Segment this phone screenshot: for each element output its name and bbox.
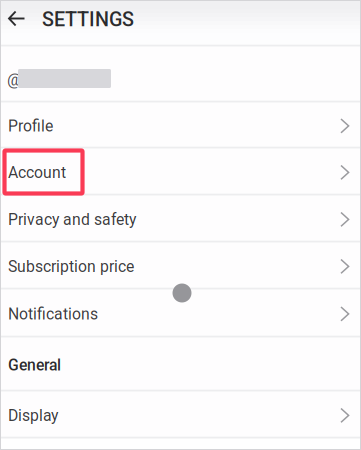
staticText: General xyxy=(8,356,61,374)
button[interactable]: Profile xyxy=(0,103,361,146)
button[interactable]: Notifications xyxy=(0,290,361,335)
button[interactable]: Display xyxy=(0,392,361,436)
button[interactable]: Back xyxy=(0,0,42,44)
staticText: Account xyxy=(8,163,66,182)
staticText: @ xyxy=(7,70,22,89)
staticText: Notifications xyxy=(8,305,98,323)
staticText: SETTINGS xyxy=(42,8,134,31)
staticText: Profile xyxy=(8,117,53,135)
staticText: Display xyxy=(8,406,58,425)
staticText: Privacy and safety xyxy=(8,210,136,229)
button[interactable]: General xyxy=(0,338,361,389)
button[interactable]: Privacy and safety xyxy=(0,196,361,240)
button[interactable]: Subscription price xyxy=(0,243,361,287)
staticText: Subscription price xyxy=(8,257,134,276)
button[interactable]: Account xyxy=(0,149,361,193)
